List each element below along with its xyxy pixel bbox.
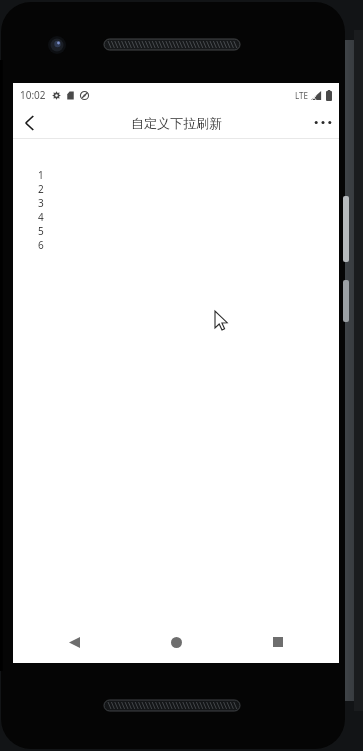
staticText: 1 (38, 168, 44, 182)
staticText: LTE (295, 90, 308, 101)
button[interactable]: 3 (38, 196, 56, 210)
button[interactable]: 2 (38, 182, 56, 196)
button[interactable]: 1 (38, 168, 56, 182)
button[interactable]: Back (57, 625, 91, 659)
button[interactable]: Recent apps (261, 625, 295, 659)
button[interactable]: 4 (38, 210, 56, 224)
staticText: 自定义下拉刷新 (131, 115, 222, 131)
staticText: 2 (38, 182, 44, 196)
button[interactable]: 6 (38, 238, 56, 252)
button[interactable]: 5 (38, 224, 56, 238)
button[interactable]: Home (159, 625, 193, 659)
staticText: 10:02 (20, 88, 46, 102)
button[interactable]: More options (307, 107, 339, 138)
staticText: 5 (38, 224, 44, 238)
staticText: 6 (38, 238, 44, 252)
button[interactable]: Back (13, 107, 45, 138)
staticText: 4 (38, 210, 44, 224)
staticText: 3 (38, 196, 44, 210)
